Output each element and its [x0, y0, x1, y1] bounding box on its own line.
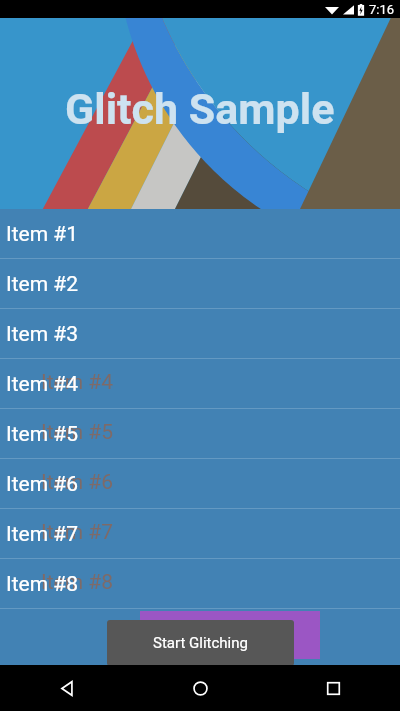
button[interactable]: Back — [0, 665, 134, 711]
button[interactable]: Item #2 — [0, 259, 400, 309]
staticText: Item #6 — [41, 470, 114, 495]
staticText: Item #8 — [6, 572, 79, 597]
staticText: Item #7 — [41, 520, 114, 545]
button[interactable]: Home — [134, 665, 267, 711]
button[interactable]: Item #7 — [0, 509, 400, 559]
staticText: Item #4 — [6, 372, 79, 397]
staticText: Item #5 — [41, 420, 114, 445]
button[interactable]: Item #5 — [0, 409, 400, 459]
staticText: Start Glitching — [153, 634, 248, 652]
staticText: Item #3 — [6, 322, 79, 347]
button[interactable]: Recent apps — [267, 665, 400, 711]
staticText: Glitch Sample — [65, 84, 335, 134]
staticText: Item #4 — [41, 370, 114, 395]
staticText: Item #6 — [6, 472, 79, 497]
button[interactable]: Start Glitching — [107, 620, 294, 666]
button[interactable]: Item #4 — [0, 359, 400, 409]
staticText: Item #7 — [6, 522, 79, 547]
button[interactable]: Item #6 — [0, 459, 400, 509]
button[interactable]: Item #3 — [0, 309, 400, 359]
staticText: Item #2 — [6, 272, 79, 297]
button[interactable]: Item #8 — [0, 559, 400, 609]
staticText: 7:16 — [369, 2, 395, 17]
staticText: Item #1 — [6, 222, 79, 247]
button[interactable]: Item #1 — [0, 209, 400, 259]
staticText: Item #5 — [6, 422, 79, 447]
staticText: Item #8 — [41, 570, 114, 595]
